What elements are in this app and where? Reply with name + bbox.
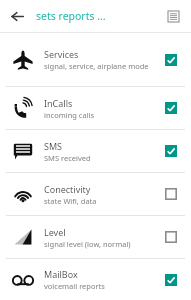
- staticText: signal level (low, normal): [44, 239, 131, 249]
- staticText: voicemail reports: [44, 281, 105, 291]
- button[interactable]: SMS: [0, 130, 191, 172]
- button[interactable]: Services: [0, 33, 191, 86]
- staticText: SMS received: [44, 153, 91, 163]
- button[interactable]: Enabled: [161, 141, 181, 161]
- button[interactable]: Disabled: [161, 227, 181, 247]
- button[interactable]: MailBox: [0, 259, 191, 300]
- staticText: state Wifi, data: [44, 196, 97, 206]
- button[interactable]: InCalls: [0, 87, 191, 129]
- staticText: signal, service, airplane mode: [44, 61, 149, 71]
- button[interactable]: Enabled: [161, 270, 181, 290]
- staticText: incoming calls: [44, 110, 95, 120]
- button[interactable]: Enabled: [161, 50, 181, 70]
- button[interactable]: Level: [0, 216, 191, 258]
- staticText: Level: [44, 226, 66, 238]
- staticText: sets reports ...: [36, 9, 106, 23]
- button[interactable]: Enabled: [161, 98, 181, 118]
- staticText: Conectivity: [44, 183, 91, 195]
- staticText: MailBox: [44, 268, 78, 280]
- staticText: InCalls: [44, 97, 73, 109]
- button[interactable]: Conectivity: [0, 173, 191, 215]
- staticText: Services: [44, 48, 79, 60]
- button[interactable]: Disabled: [161, 184, 181, 204]
- button[interactable]: Reports log: [163, 6, 183, 26]
- staticText: SMS: [44, 140, 63, 152]
- button[interactable]: Back: [6, 5, 28, 27]
